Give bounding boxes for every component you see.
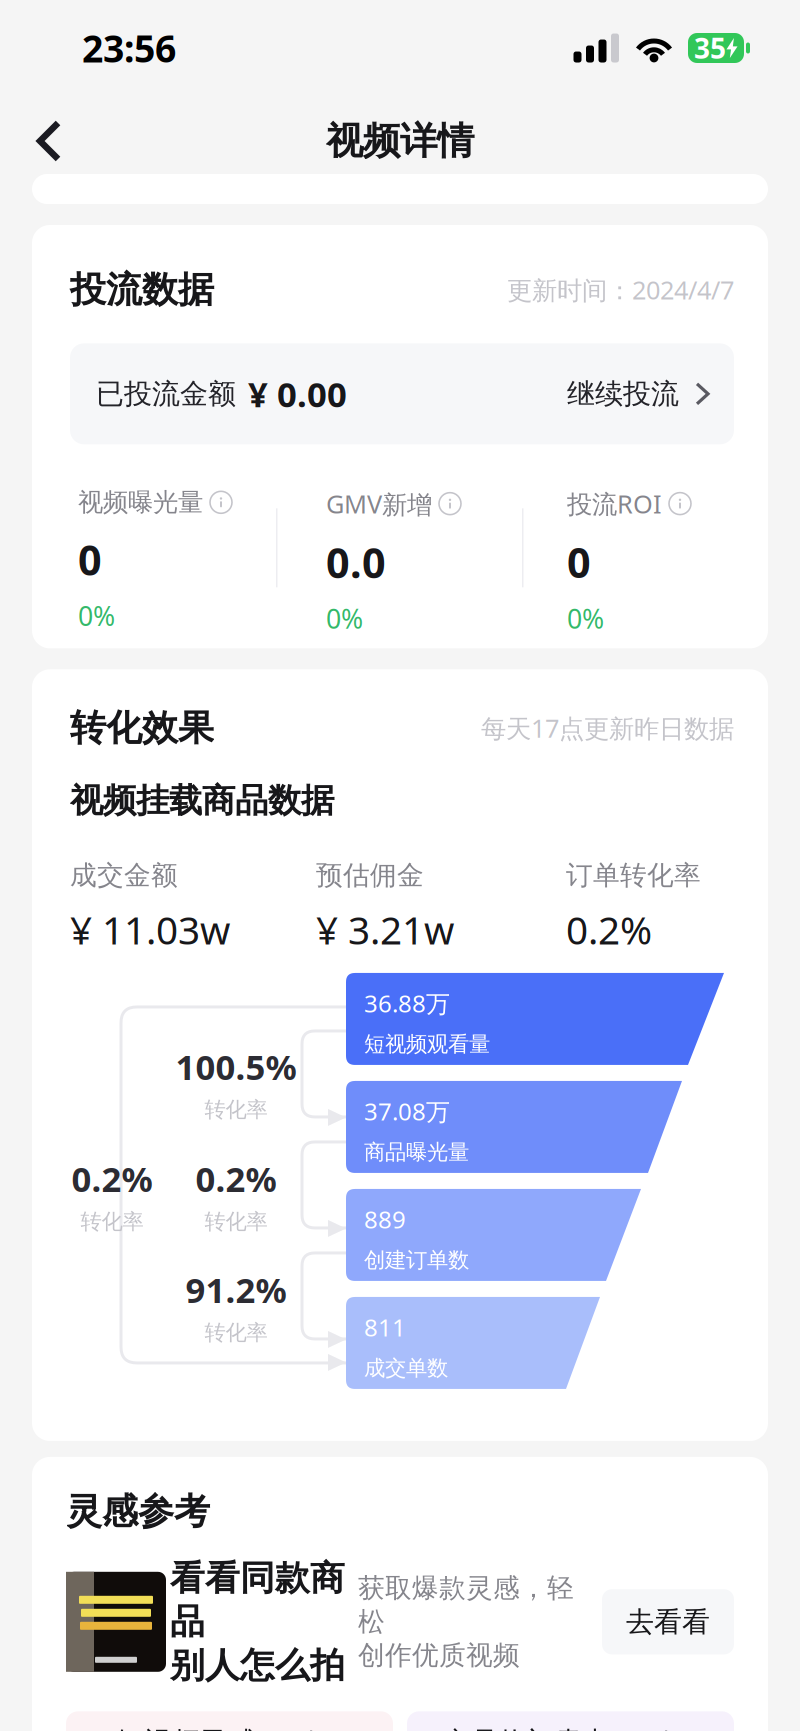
staticText: ¥ 0.00 (248, 370, 347, 417)
staticText: 视频挂载商品数据 (70, 780, 334, 822)
staticText: 转化率 (204, 1096, 267, 1123)
button[interactable]: 去看看 (602, 1589, 734, 1654)
button[interactable]: 已投流金额 (70, 343, 734, 444)
staticText: 继续投流 (567, 376, 679, 411)
staticText: 37.08万 (364, 1095, 450, 1128)
staticText: 0.2% (566, 903, 652, 956)
staticText: 预估佣金 (316, 859, 424, 892)
staticText: 100.5% (175, 1043, 296, 1090)
staticText: 转化效果 (70, 705, 214, 751)
staticText: 灵感参考 (66, 1489, 210, 1534)
staticText: 投流数据 (70, 267, 214, 312)
staticText: 短视频灵感 (115, 1725, 255, 1731)
staticText: 获取爆款灵感，轻松 创作优质视频 (358, 1571, 574, 1672)
staticText: 投流ROI (567, 486, 662, 521)
staticText: 0.2% (71, 1155, 152, 1202)
staticText: 已投流金额 (96, 376, 236, 411)
staticText: 去看看 (626, 1604, 710, 1639)
staticText: 转化率 (204, 1319, 267, 1346)
staticText: 0 (567, 534, 591, 590)
staticText: 0% (78, 598, 115, 634)
staticText: 23:56 (82, 23, 176, 73)
staticText: 更新时间：2024/4/7 (507, 272, 734, 307)
staticText: 811 (364, 1311, 406, 1344)
staticText: ¥ 3.21w (316, 903, 454, 956)
staticText: 0.0 (326, 534, 386, 590)
staticText: 0% (567, 600, 604, 636)
staticText: 订单转化率 (566, 859, 701, 892)
staticText: GMV新增 (326, 486, 432, 521)
staticText: 商品曝光量 (364, 1139, 469, 1165)
staticText: 看看同款商品 别人怎么拍 (170, 1556, 345, 1687)
staticText: 短视频观看量 (364, 1031, 490, 1057)
staticText: 0.2% (195, 1155, 276, 1202)
staticText: ¥ 11.03w (70, 903, 230, 956)
staticText: 36个 (265, 1723, 325, 1731)
staticText: 0 (78, 531, 102, 588)
staticText: 成交单数 (364, 1355, 448, 1381)
staticText: 35 (694, 29, 726, 67)
staticText: 成交金额 (70, 859, 178, 892)
staticText: 每天17点更新昨日数据 (481, 711, 734, 745)
staticText: 转化率 (80, 1208, 143, 1235)
staticText: 创建订单数 (364, 1247, 469, 1273)
button[interactable]: 商品热门卖点 (407, 1711, 734, 1731)
staticText: 36.88万 (364, 987, 450, 1020)
staticText: 视频曝光量 (78, 486, 203, 518)
staticText: 商品热门卖点 (442, 1725, 610, 1731)
staticText: 0% (326, 600, 363, 636)
button[interactable]: Back (0, 103, 86, 179)
staticText: 11个 (620, 1723, 680, 1731)
staticText: 91.2% (185, 1266, 286, 1313)
staticText: 视频详情 (326, 117, 474, 164)
staticText: 转化率 (204, 1208, 267, 1235)
button[interactable]: 短视频灵感 (66, 1711, 393, 1731)
staticText: 889 (364, 1203, 406, 1236)
